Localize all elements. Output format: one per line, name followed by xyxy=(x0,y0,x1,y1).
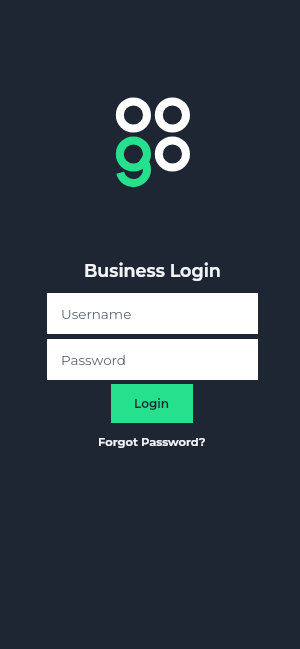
staticText: Username xyxy=(61,306,132,322)
staticText: Business Login xyxy=(84,260,221,281)
button[interactable]: Username xyxy=(47,293,258,334)
button[interactable]: Password xyxy=(47,339,258,380)
staticText: Password xyxy=(61,352,127,368)
button[interactable]: Forgot Password? xyxy=(98,435,206,449)
staticText: Forgot Password? xyxy=(98,435,206,449)
button[interactable]: Login xyxy=(111,384,193,423)
staticText: Login xyxy=(134,396,170,411)
